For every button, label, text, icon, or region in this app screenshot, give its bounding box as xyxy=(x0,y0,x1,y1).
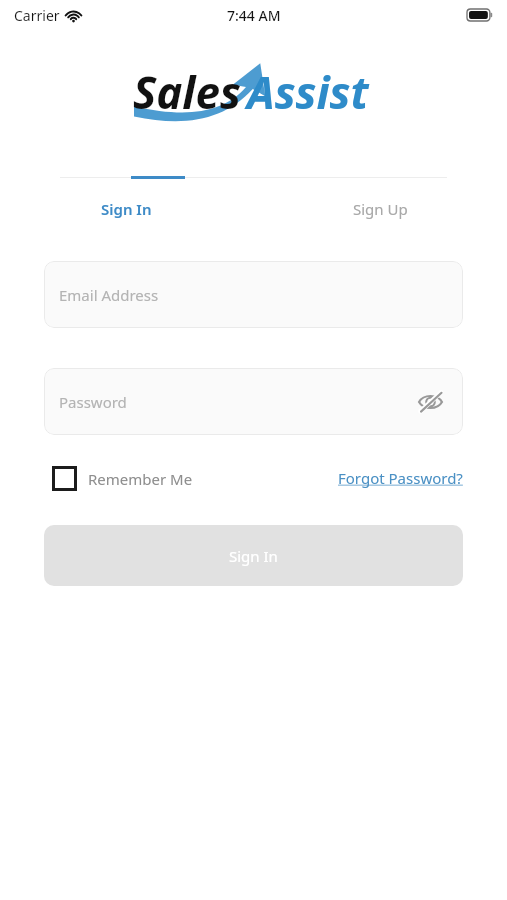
staticText: Remember Me xyxy=(88,469,193,489)
button[interactable]: Show password xyxy=(413,385,447,419)
button[interactable]: Sign In xyxy=(0,193,253,225)
staticText: Forgot Password? xyxy=(338,468,463,488)
staticText: Sign In xyxy=(229,546,278,566)
staticText: 7:44 AM xyxy=(227,6,281,25)
button[interactable]: Email Address xyxy=(44,261,463,328)
button[interactable]: Remember Me xyxy=(44,466,199,491)
staticText: Sign In xyxy=(101,199,152,219)
staticText: Sign Up xyxy=(353,199,408,219)
button[interactable]: Sign Up xyxy=(253,193,507,225)
staticText: Password xyxy=(59,392,127,412)
staticText: Carrier xyxy=(14,6,60,25)
staticText: Email Address xyxy=(59,285,159,305)
staticText: Sales xyxy=(133,62,241,122)
button[interactable]: Forgot Password? xyxy=(338,468,463,488)
staticText: Assist xyxy=(247,62,369,122)
button[interactable]: Password xyxy=(44,368,463,435)
